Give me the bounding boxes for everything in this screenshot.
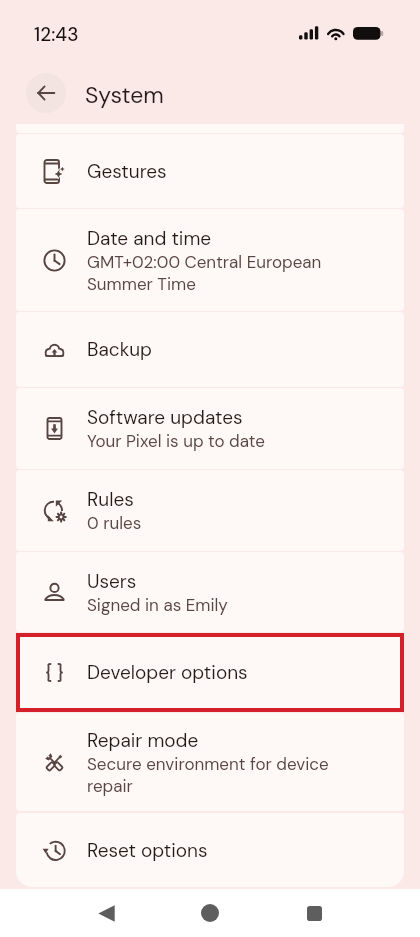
staticText: Your Pixel is up to date [87, 430, 337, 452]
staticText: Reset options [87, 838, 208, 863]
button[interactable]: Home [158, 889, 262, 937]
button[interactable]: Gestures [16, 134, 404, 208]
button[interactable]: Back [54, 889, 158, 937]
button[interactable]: Repair mode [16, 713, 404, 811]
staticText: 0 rules [87, 512, 337, 534]
button[interactable]: Back [26, 73, 66, 113]
button[interactable]: Date and time [16, 209, 404, 311]
staticText: Signed in as Emily [87, 594, 337, 616]
staticText: System [85, 80, 164, 110]
staticText: Backup [87, 337, 153, 362]
staticText: Date and time [87, 226, 212, 251]
staticText: Rules [87, 487, 134, 512]
staticText: GMT+02:00 Central European Summer Time [87, 251, 333, 295]
button[interactable]: Users [16, 552, 404, 632]
button[interactable]: Reset options [16, 813, 404, 887]
staticText: 12:43 [34, 22, 79, 47]
button[interactable]: Developer options [16, 633, 404, 712]
staticText: Software updates [87, 405, 243, 430]
button[interactable]: Recent apps [262, 889, 366, 937]
staticText: Secure environment for device repair [87, 753, 337, 797]
staticText: Repair mode [87, 728, 199, 753]
staticText: Users [87, 569, 137, 594]
staticText: Gestures [87, 159, 167, 184]
button[interactable]: Software updates [16, 388, 404, 469]
button[interactable]: Rules [16, 470, 404, 551]
button[interactable]: Backup [16, 312, 404, 387]
staticText: Developer options [87, 660, 248, 685]
